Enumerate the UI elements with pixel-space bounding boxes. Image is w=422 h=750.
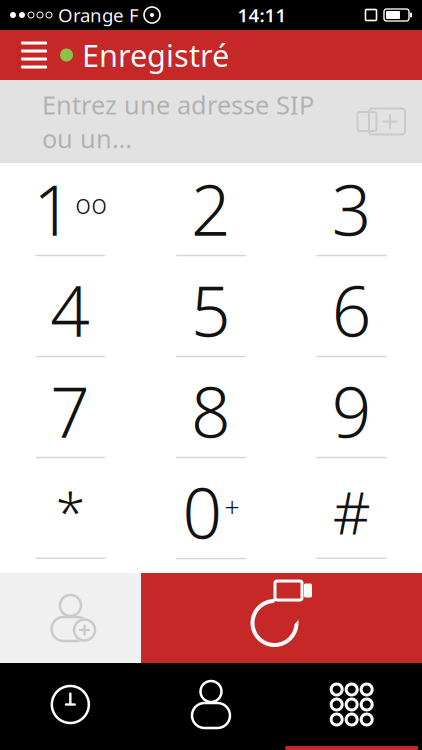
button[interactable]: 7 (0, 365, 141, 466)
staticText: oo (75, 186, 107, 221)
staticText: # (333, 473, 371, 551)
button[interactable]: Ajouter un contact (0, 573, 141, 663)
staticText: 7 (50, 365, 90, 457)
button[interactable]: # (281, 466, 422, 567)
button[interactable]: 9 (281, 365, 422, 466)
staticText: Enregistré (82, 35, 229, 75)
button[interactable]: 1 (0, 163, 141, 264)
staticText: 5 (191, 264, 231, 356)
button[interactable]: Menu (8, 30, 60, 80)
button[interactable]: 0 (141, 466, 281, 567)
staticText: 14:11 (237, 3, 286, 27)
button[interactable]: Appel vidéo (141, 573, 422, 663)
button[interactable]: 8 (141, 365, 281, 466)
staticText: 4 (50, 264, 90, 356)
button[interactable]: 6 (281, 264, 422, 365)
button[interactable]: * (0, 466, 141, 567)
button[interactable]: 2 (141, 163, 281, 264)
staticText: 8 (191, 365, 231, 457)
staticText: 2 (191, 163, 231, 255)
button[interactable]: 4 (0, 264, 141, 365)
button[interactable]: Historique (0, 663, 141, 750)
staticText: * (56, 476, 85, 547)
staticText: 1 (33, 163, 73, 255)
button[interactable]: Clavier (281, 663, 422, 750)
staticText: 3 (332, 163, 372, 255)
staticText: + (224, 489, 239, 524)
button[interactable]: Effacer (350, 95, 412, 147)
staticText: 6 (332, 264, 372, 356)
staticText: Orange F (58, 3, 139, 27)
button[interactable]: Contacts (141, 663, 281, 750)
staticText: 0 (182, 466, 222, 558)
staticText: Entrez une adresse SIP ou un… (42, 88, 314, 155)
staticText: 9 (332, 365, 372, 457)
button[interactable]: Enregistré (60, 27, 229, 83)
button[interactable]: 5 (141, 264, 281, 365)
button[interactable]: 3 (281, 163, 422, 264)
